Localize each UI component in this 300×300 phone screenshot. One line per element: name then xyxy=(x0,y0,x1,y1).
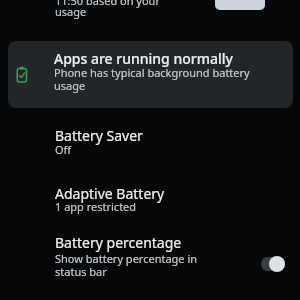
button[interactable] xyxy=(215,0,265,10)
button[interactable]: Apps are running normally xyxy=(8,41,293,108)
staticText: 11:50 based on your xyxy=(55,0,160,8)
staticText: Phone has typical background battery usa… xyxy=(54,65,250,93)
staticText: Adaptive Battery xyxy=(55,184,165,203)
staticText: usage xyxy=(55,4,87,19)
staticText: Apps are running normally xyxy=(54,49,233,68)
staticText: Battery percentage xyxy=(55,233,182,252)
button[interactable]: Battery Saver xyxy=(0,118,300,164)
staticText: 1 app restricted xyxy=(55,199,137,214)
button[interactable]: Adaptive Battery xyxy=(0,176,300,222)
button[interactable]: Battery percentage xyxy=(0,228,300,290)
staticText: Off xyxy=(55,142,72,157)
button[interactable] xyxy=(261,257,285,271)
staticText: Battery Saver xyxy=(55,126,143,145)
staticText: Show battery percentage in status bar xyxy=(55,251,198,279)
